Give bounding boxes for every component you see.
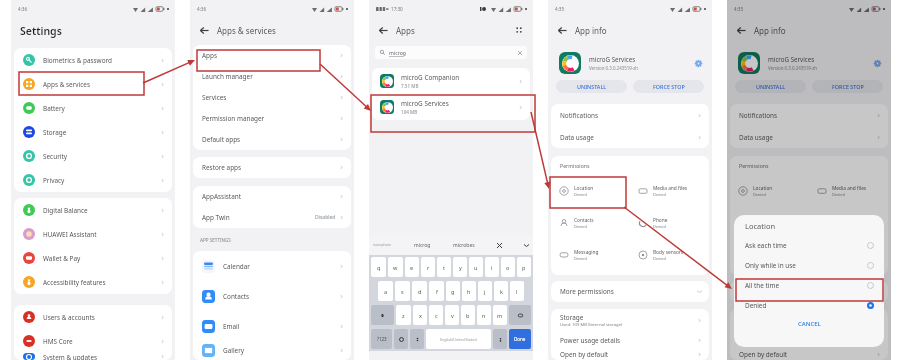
button[interactable]: Services	[193, 87, 351, 108]
button[interactable]: Power usage details	[730, 331, 888, 349]
button[interactable]	[493, 329, 507, 349]
button[interactable]: Wallet & Pay	[14, 246, 172, 270]
button[interactable]: Default apps	[193, 129, 351, 150]
button[interactable]: Open by default	[730, 349, 888, 360]
button[interactable]: m	[493, 305, 507, 325]
button[interactable]: Messaging	[730, 239, 809, 271]
button[interactable]: Only while in use	[734, 255, 884, 275]
button[interactable]: Storage	[14, 120, 172, 144]
button[interactable]: Gallery	[193, 341, 351, 360]
button[interactable]: System & updates	[14, 353, 172, 360]
button[interactable]: App settings	[872, 58, 882, 68]
button[interactable]: HUAWEI Assistant	[14, 222, 172, 246]
button[interactable]: x	[413, 305, 427, 325]
button[interactable]: Apps	[193, 45, 351, 66]
button[interactable]: Apps & services	[14, 72, 172, 96]
button[interactable]: Denied	[734, 295, 884, 315]
button[interactable]: Ask each time	[734, 235, 884, 255]
button[interactable]: c	[429, 305, 443, 325]
button[interactable]: Contacts	[551, 207, 630, 239]
button[interactable]: Back	[377, 24, 390, 37]
button[interactable]	[371, 305, 394, 325]
button[interactable]: b	[461, 305, 475, 325]
button[interactable]: a	[378, 281, 393, 301]
button[interactable]: Back	[735, 24, 748, 37]
button[interactable]: t	[437, 257, 451, 277]
button[interactable]: Done	[509, 329, 531, 349]
button[interactable]: Contacts	[193, 281, 351, 311]
button[interactable]: Open by default	[551, 349, 709, 360]
button[interactable]: CANCEL	[788, 318, 831, 330]
button[interactable]: e	[405, 257, 419, 277]
button[interactable]: Users & accounts	[14, 305, 172, 329]
button[interactable]: Body sensors	[809, 239, 888, 271]
button[interactable]: p	[517, 257, 531, 277]
button[interactable]: Phone	[630, 207, 709, 239]
button[interactable]: Power usage details	[551, 331, 709, 349]
button[interactable]: w	[388, 257, 403, 277]
button[interactable]: Permission manager	[193, 108, 351, 129]
button[interactable]: UNINSTALL	[556, 80, 627, 93]
button[interactable]: z	[396, 305, 411, 325]
button[interactable]: microG Companion	[372, 68, 530, 94]
button[interactable]: Accessibility features	[14, 270, 172, 294]
button[interactable]: Notifications	[551, 104, 709, 126]
button[interactable]: Data usage	[730, 126, 888, 148]
button[interactable]: Email	[193, 311, 351, 341]
button[interactable]: Location	[551, 175, 630, 207]
button[interactable]: q	[371, 257, 386, 277]
button[interactable]: Media and files	[809, 175, 888, 207]
button[interactable]: h	[462, 281, 476, 301]
button[interactable]: Battery	[14, 96, 172, 120]
button[interactable]: o	[501, 257, 515, 277]
button[interactable]: AppAssistant	[193, 186, 351, 207]
button[interactable]: Media and files	[630, 175, 709, 207]
button[interactable]	[509, 305, 531, 325]
button[interactable]: More permissions	[730, 281, 888, 302]
button[interactable]: Security	[14, 144, 172, 168]
button[interactable]: Notifications	[730, 104, 888, 126]
button[interactable]: HMS Core	[14, 329, 172, 353]
button[interactable]: Restore apps	[193, 157, 351, 178]
button[interactable]: l	[510, 281, 524, 301]
button[interactable]: ?123	[371, 329, 392, 349]
button[interactable]: Location	[730, 175, 809, 207]
button[interactable]: All the time	[734, 275, 884, 295]
button[interactable]: v	[445, 305, 459, 325]
button[interactable]: u	[469, 257, 483, 277]
button[interactable]: Data usage	[551, 126, 709, 148]
button[interactable]: Biometrics & password	[14, 48, 172, 72]
button[interactable]: y	[453, 257, 467, 277]
button[interactable]: FORCE STOP	[812, 80, 883, 93]
button[interactable]: d	[412, 281, 427, 301]
button[interactable]: microG Services	[372, 94, 530, 120]
button[interactable]: App settings	[693, 58, 703, 68]
button[interactable]: Launch manager	[193, 66, 351, 87]
button[interactable]: Messaging	[551, 239, 630, 271]
button[interactable]: Contacts	[730, 207, 809, 239]
button[interactable]: English(United States)	[426, 329, 491, 349]
button[interactable]: View options	[513, 24, 525, 36]
button[interactable]: k	[494, 281, 508, 301]
button[interactable]: Privacy	[14, 168, 172, 192]
button[interactable]: Body sensors	[630, 239, 709, 271]
button[interactable]: microg	[375, 46, 527, 59]
button[interactable]: r	[421, 257, 435, 277]
button[interactable]: Back	[556, 24, 569, 37]
button[interactable]: f	[429, 281, 444, 301]
button[interactable]: Storage	[730, 309, 888, 331]
button[interactable]: Calendar	[193, 251, 351, 281]
button[interactable]	[410, 329, 424, 349]
button[interactable]: UNINSTALL	[735, 80, 806, 93]
button[interactable]: g	[446, 281, 460, 301]
button[interactable]: Storage	[551, 309, 709, 331]
button[interactable]: s	[395, 281, 410, 301]
button[interactable]	[394, 329, 408, 349]
button[interactable]: n	[477, 305, 491, 325]
button[interactable]: j	[478, 281, 492, 301]
button[interactable]: More permissions	[551, 281, 709, 302]
button[interactable]: Back	[198, 24, 211, 37]
button[interactable]: Phone	[809, 207, 888, 239]
button[interactable]: App Twin	[193, 207, 351, 228]
button[interactable]: i	[485, 257, 499, 277]
